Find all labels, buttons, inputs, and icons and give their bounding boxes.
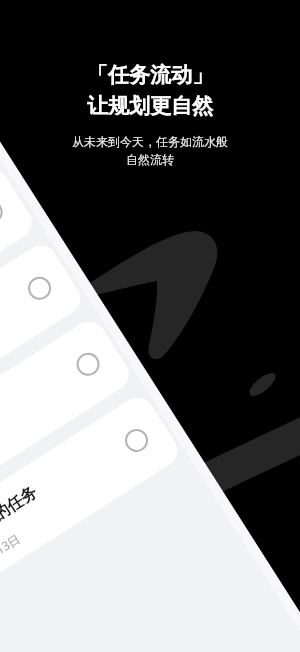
staticText: 「任务流动」	[87, 62, 213, 88]
staticText: 自然流转	[126, 152, 174, 167]
staticText: 让规划更自然	[87, 93, 213, 119]
staticText: 从未来到今天，任务如流水般	[72, 134, 228, 149]
